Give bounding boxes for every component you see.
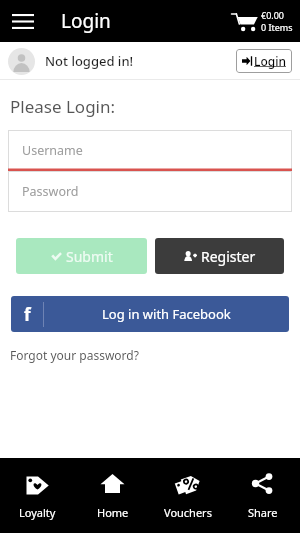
- staticText: Please Login:: [10, 95, 116, 118]
- staticText: Username: [22, 142, 83, 159]
- button[interactable]: Password: [8, 171, 292, 212]
- button[interactable]: Username: [8, 130, 292, 171]
- staticText: Log in with Facebook: [102, 305, 231, 323]
- staticText: Not logged in!: [45, 52, 134, 70]
- button[interactable]: Register: [155, 238, 284, 274]
- button[interactable]: Submit: [16, 238, 147, 274]
- staticText: 0 Items: [261, 21, 293, 33]
- button[interactable]: Vouchers: [150, 458, 225, 533]
- button[interactable]: Shopping cart, 0 items, total 0.00 euro: [231, 9, 293, 33]
- staticText: Submit: [66, 247, 113, 266]
- button[interactable]: Home: [75, 458, 150, 533]
- button[interactable]: Loyalty: [0, 458, 75, 533]
- button[interactable]: Forgot your password?: [10, 347, 139, 363]
- staticText: Share: [248, 505, 278, 520]
- staticText: Password: [22, 183, 79, 200]
- staticText: f: [24, 303, 31, 326]
- button[interactable]: Open navigation menu: [5, 3, 41, 39]
- staticText: Login: [61, 8, 111, 34]
- staticText: Vouchers: [164, 505, 212, 520]
- button[interactable]: Share: [225, 458, 300, 533]
- staticText: Login: [254, 53, 286, 69]
- staticText: Loyalty: [19, 505, 56, 520]
- staticText: Home: [97, 505, 129, 520]
- button[interactable]: f: [11, 296, 289, 332]
- button[interactable]: Login: [236, 49, 292, 73]
- staticText: Register: [201, 247, 256, 266]
- staticText: €0.00: [261, 9, 285, 21]
